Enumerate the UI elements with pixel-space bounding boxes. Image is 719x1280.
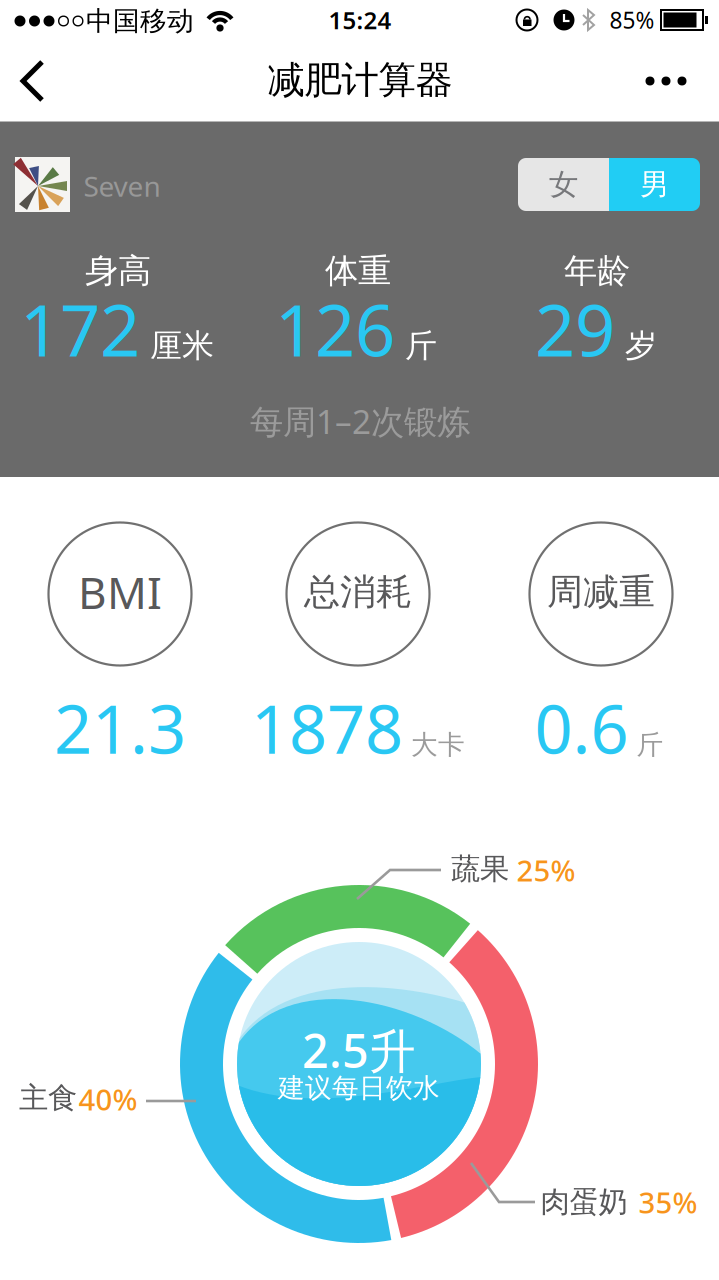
button[interactable]: Back — [3, 40, 63, 122]
staticText: 126 — [275, 282, 395, 376]
staticText: 大卡 — [411, 729, 465, 761]
staticText: 岁 — [625, 326, 657, 365]
staticText: 女 — [549, 166, 578, 202]
staticText: 172 — [20, 282, 140, 376]
button[interactable]: 女 — [518, 158, 609, 211]
staticText: 25% — [516, 850, 575, 889]
staticText: 0.6 — [534, 684, 628, 772]
staticText: 85% — [609, 5, 654, 35]
staticText: 蔬果 — [451, 851, 509, 887]
staticText: 身高 — [85, 250, 151, 291]
staticText: 建议每日饮水 — [278, 1072, 440, 1104]
button[interactable]: 男 — [609, 158, 700, 211]
staticText: 斤 — [636, 729, 663, 761]
staticText: 周减重 — [547, 570, 655, 614]
staticText: 35% — [638, 1182, 697, 1221]
staticText: 1878 — [251, 684, 403, 772]
button[interactable]: More — [620, 51, 712, 111]
staticText: 年龄 — [564, 250, 630, 291]
staticText: 减肥计算器 — [267, 57, 452, 103]
staticText: 每周1–2次锻炼 — [250, 399, 470, 443]
staticText: 体重 — [325, 250, 391, 291]
button[interactable]: Seven profile — [0, 152, 175, 216]
staticText: BMI — [78, 563, 162, 621]
staticText: Seven — [83, 167, 160, 205]
staticText: 40% — [78, 1079, 137, 1118]
staticText: 15:24 — [328, 4, 391, 36]
staticText: 斤 — [405, 326, 437, 365]
staticText: 2.5升 — [302, 1019, 416, 1081]
staticText: 厘米 — [150, 326, 214, 365]
staticText: 29 — [535, 282, 615, 376]
staticText: 总消耗 — [304, 570, 412, 614]
staticText: 主食 — [19, 1080, 77, 1116]
staticText: 21.3 — [54, 684, 186, 772]
staticText: 男 — [640, 166, 669, 202]
staticText: 中国移动 — [86, 5, 194, 37]
staticText: 肉蛋奶 — [540, 1184, 627, 1220]
